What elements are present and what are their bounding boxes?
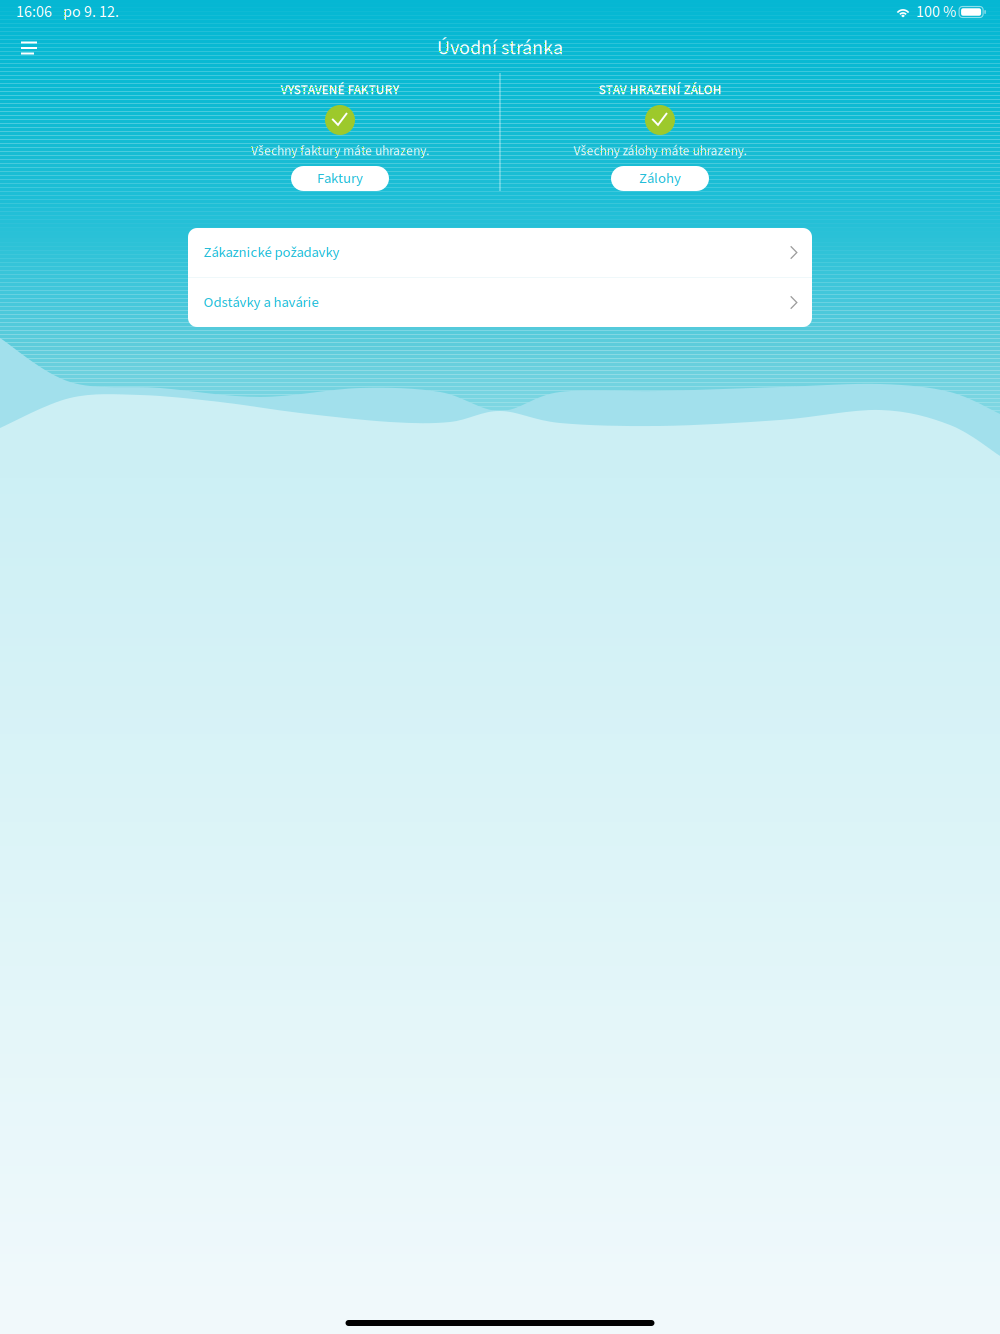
staticText: Faktury <box>317 168 363 189</box>
staticText: Odstávky a havárie <box>203 292 318 313</box>
staticText: Úvodní stránka <box>437 34 563 62</box>
staticText: Zálohy <box>639 168 681 189</box>
button[interactable]: Zákaznické požadavky <box>188 228 812 277</box>
button[interactable]: Faktury <box>291 166 389 191</box>
staticText: VYSTAVENÉ FAKTURY <box>280 80 399 99</box>
staticText: po 9. 12. <box>63 1 119 23</box>
button[interactable]: Odstávky a havárie <box>188 278 812 327</box>
staticText: Všechny zálohy máte uhrazeny. <box>573 141 746 160</box>
button[interactable]: Menu <box>7 26 51 70</box>
staticText: STAV HRAZENÍ ZÁLOH <box>598 80 721 99</box>
staticText: Zákaznické požadavky <box>203 242 339 263</box>
staticText: 16:06 <box>16 1 52 23</box>
staticText: Všechny faktury máte uhrazeny. <box>251 141 429 160</box>
staticText: 100 % <box>916 1 956 23</box>
button[interactable]: Zálohy <box>611 166 709 191</box>
